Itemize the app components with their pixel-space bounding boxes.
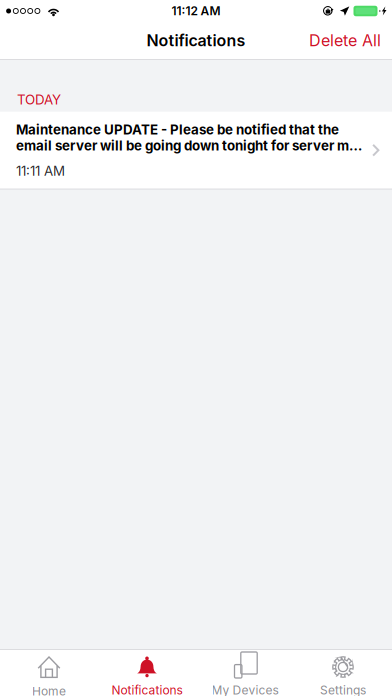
button[interactable]: Maintenance UPDATE - Please be notified … bbox=[0, 112, 392, 189]
button[interactable]: Settings bbox=[294, 650, 392, 696]
staticText: Home bbox=[32, 684, 66, 696]
staticText: My Devices bbox=[211, 683, 278, 696]
staticText: 11:12 AM bbox=[171, 4, 220, 18]
button[interactable]: My Devices bbox=[196, 650, 294, 696]
button[interactable]: Delete All bbox=[298, 22, 392, 59]
staticText: Notifications bbox=[146, 31, 245, 50]
staticText: Delete All bbox=[309, 31, 381, 50]
button[interactable]: Notifications bbox=[98, 650, 196, 696]
staticText: 11:11 AM bbox=[16, 163, 65, 179]
staticText: Notifications bbox=[111, 683, 182, 696]
staticText: TODAY bbox=[17, 92, 61, 108]
button[interactable]: Home bbox=[0, 650, 98, 696]
staticText: Settings bbox=[320, 683, 366, 696]
staticText: Maintenance UPDATE - Please be notified … bbox=[16, 121, 364, 154]
